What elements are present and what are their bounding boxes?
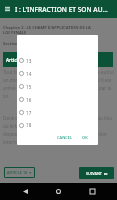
button[interactable]: 16 xyxy=(17,93,98,106)
button[interactable]: Recents xyxy=(84,183,101,200)
button[interactable]: ARTICLE 10 ▾ xyxy=(4,167,35,178)
staticText: Tout fait quelconque de l'homme qui caus… xyxy=(3,69,114,100)
staticText: CANCEL xyxy=(57,135,73,140)
staticText: ARTICLE 10 ▾ xyxy=(7,170,32,175)
staticText: 17 xyxy=(26,110,32,116)
staticText: 18 xyxy=(26,122,32,128)
button[interactable]: Back xyxy=(17,183,34,200)
staticText: I : L'INFRACTION ET SON AU... xyxy=(15,5,108,14)
staticText: 16 xyxy=(26,97,32,103)
staticText: Chapitre 2 : LE CHAMP D'APPLICATION DE L… xyxy=(3,25,91,35)
staticText: 15 xyxy=(26,84,32,90)
button[interactable]: 15 xyxy=(17,80,98,93)
staticText: Section I : L'application de la loi dans… xyxy=(3,41,94,46)
staticText: 14 xyxy=(26,71,32,77)
button[interactable]: 14 xyxy=(17,67,98,80)
button[interactable]: 18 xyxy=(17,119,98,131)
staticText: Article 10 xyxy=(6,57,27,63)
staticText: 13 xyxy=(26,58,32,64)
button[interactable]: OK xyxy=(81,134,89,141)
staticText: OK xyxy=(82,135,88,140)
button[interactable]: Menu xyxy=(0,0,15,18)
button[interactable]: Home xyxy=(50,183,67,200)
staticText: Dans ce cas, le tribunal compétent est c… xyxy=(3,115,114,146)
button[interactable]: CANCEL xyxy=(56,134,74,141)
staticText: SUIVANT ▸▸ xyxy=(86,171,108,176)
button[interactable]: 17 xyxy=(17,106,98,119)
button[interactable]: 13 xyxy=(17,54,98,67)
button[interactable]: SUIVANT ▸▸ xyxy=(79,167,114,179)
